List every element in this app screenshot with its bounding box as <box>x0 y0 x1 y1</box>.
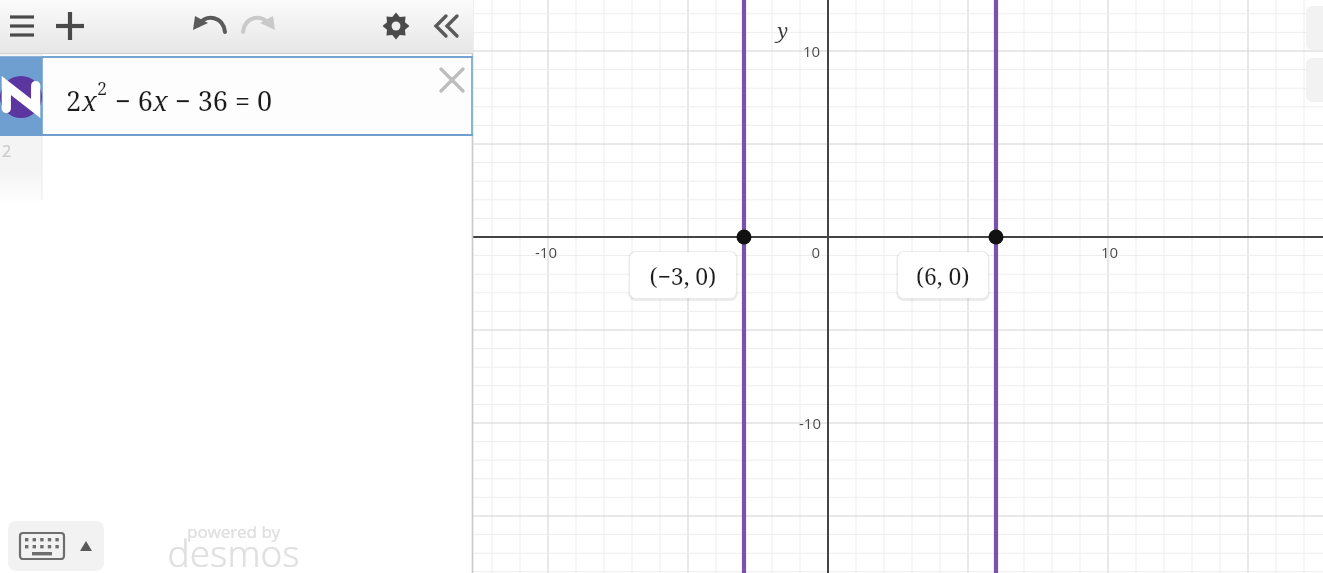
button[interactable]: Toggle keyboard <box>8 521 104 571</box>
button[interactable]: Collapse panel <box>426 2 464 52</box>
button[interactable]: Add expression <box>52 2 88 52</box>
button[interactable]: Redo <box>240 2 280 52</box>
button[interactable] <box>0 57 473 135</box>
button[interactable]: Menu <box>4 2 40 52</box>
button[interactable]: Settings <box>378 2 416 52</box>
button[interactable]: Undo <box>190 2 230 52</box>
button[interactable]: Delete expression <box>434 62 470 98</box>
